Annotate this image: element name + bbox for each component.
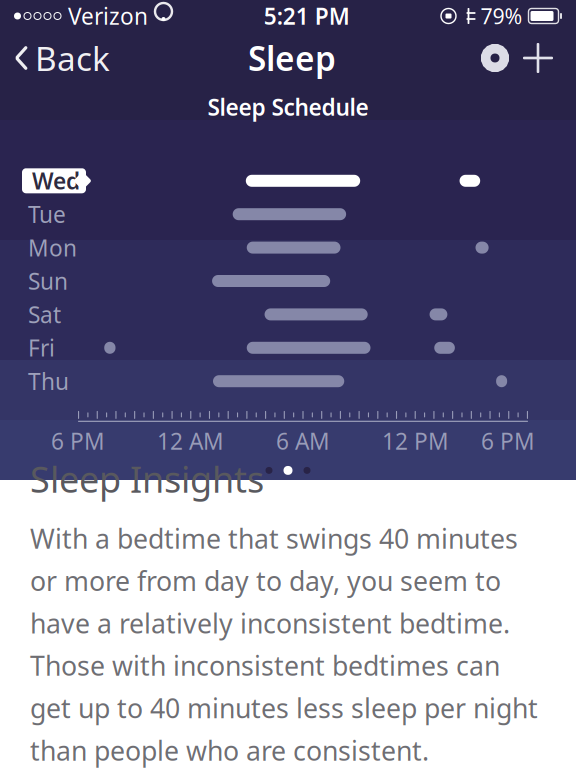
staticText: Sun xyxy=(28,266,68,296)
staticText: 6 AM xyxy=(276,426,330,456)
staticText: Verizon xyxy=(68,1,148,31)
staticText: Fri xyxy=(28,333,55,363)
staticText: 5:21 PM xyxy=(264,1,350,31)
staticText: 6 PM xyxy=(481,426,535,456)
button[interactable]: Back xyxy=(0,30,110,86)
staticText: 12 PM xyxy=(382,426,449,456)
staticText: Sleep Schedule xyxy=(207,92,368,122)
staticText: Sat xyxy=(28,299,61,329)
staticText: Wed xyxy=(32,166,80,196)
staticText: Back xyxy=(35,36,110,80)
staticText: 6 PM xyxy=(51,426,105,456)
staticText: With a bedtime that swings 40 minutes or… xyxy=(30,521,538,768)
staticText: Sleep Insights xyxy=(30,455,264,503)
staticText: Sleep xyxy=(248,36,336,80)
staticText: Thu xyxy=(28,366,69,396)
staticText: Tue xyxy=(28,199,66,229)
button[interactable]: Add xyxy=(516,38,560,78)
staticText: 79% xyxy=(480,2,522,30)
button[interactable]: Settings xyxy=(474,37,516,79)
staticText: 12 AM xyxy=(157,426,224,456)
staticText: Mon xyxy=(28,233,77,263)
